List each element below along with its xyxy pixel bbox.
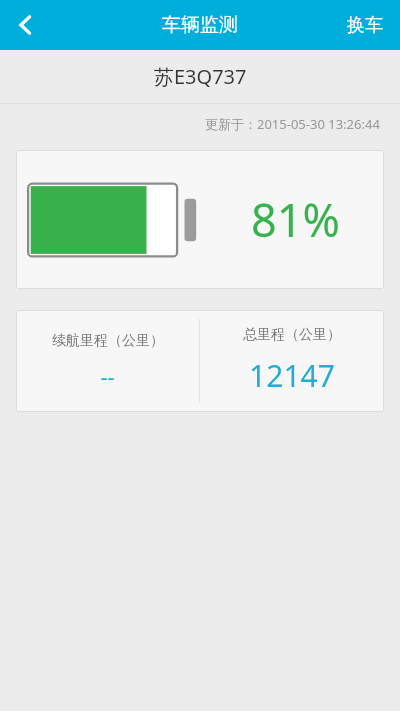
staticText: 苏E3Q737 [154,63,247,90]
staticText: 车辆监测 [162,13,238,37]
staticText: 总里程（公里） [243,326,341,344]
button[interactable]: 续航里程（公里） [16,310,199,412]
button[interactable]: Back [0,0,52,50]
button[interactable]: 总里程（公里） [200,310,384,412]
button[interactable]: 81% [16,150,384,289]
staticText: 81% [251,189,340,250]
staticText: 12147 [249,355,335,396]
button[interactable]: 换车 [330,0,400,50]
staticText: 换车 [347,14,383,37]
staticText: -- [100,361,115,391]
staticText: 更新于：2015-05-30 13:26:44 [205,115,380,133]
staticText: 续航里程（公里） [52,332,164,350]
